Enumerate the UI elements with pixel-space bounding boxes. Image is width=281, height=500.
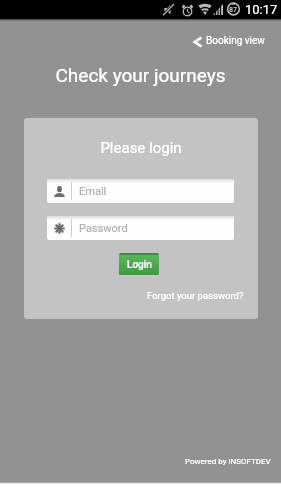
button[interactable]: Login [119,253,159,275]
staticText: 10:17 [245,2,278,17]
staticText: Please login [24,139,258,157]
button[interactable]: Password [47,216,234,240]
staticText: Check your journeys [0,64,281,86]
staticText: Login [127,259,152,271]
staticText: Booking view [206,35,265,47]
staticText: Powered by INSOFTDEV [185,457,271,466]
button[interactable]: Forgot your password? [147,290,244,301]
staticText: 87 [229,6,238,14]
staticText: Password [79,222,128,235]
button[interactable]: Email [47,179,234,203]
button[interactable]: Booking view [190,32,279,50]
staticText: Email [79,185,107,198]
